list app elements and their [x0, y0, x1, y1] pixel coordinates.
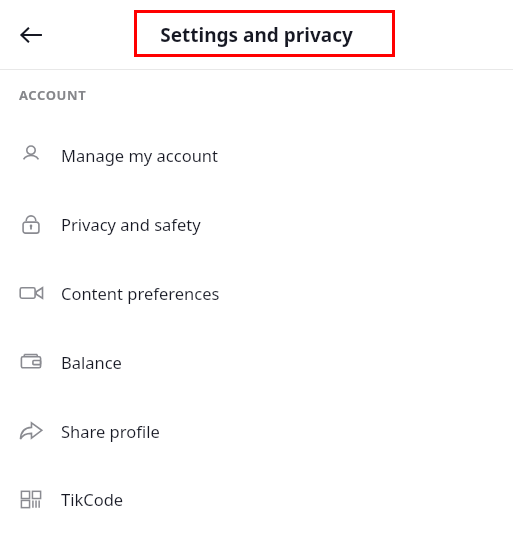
staticText: Content preferences — [61, 282, 220, 304]
staticText: TikCode — [61, 488, 124, 510]
staticText: ACCOUNT — [19, 86, 87, 104]
staticText: Share profile — [61, 420, 160, 442]
button[interactable]: Content preferences — [0, 258, 513, 327]
button[interactable]: Share profile — [0, 396, 513, 465]
button[interactable]: Balance — [0, 327, 513, 396]
button[interactable]: Manage my account — [0, 120, 513, 189]
button[interactable]: TikCode — [0, 465, 513, 533]
button[interactable]: Privacy and safety — [0, 189, 513, 258]
staticText: Privacy and safety — [61, 213, 201, 235]
staticText: Balance — [61, 351, 122, 373]
staticText: Settings and privacy — [160, 22, 353, 48]
button[interactable]: Back — [9, 13, 53, 57]
staticText: Manage my account — [61, 144, 218, 166]
